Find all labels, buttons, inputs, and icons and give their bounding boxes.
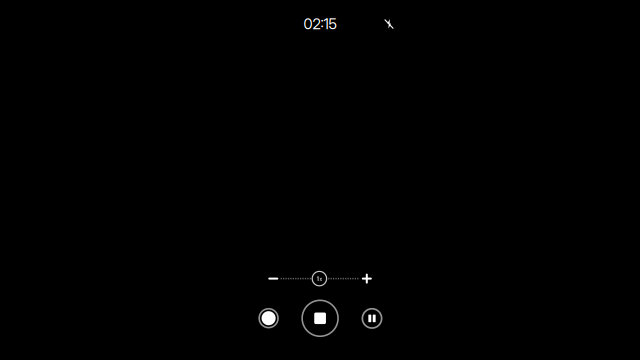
button[interactable]: Zoom In — [356, 268, 378, 290]
button[interactable]: Stop Recording — [298, 296, 342, 340]
button[interactable]: Take Photo — [249, 298, 289, 338]
button[interactable]: Pause Recording — [354, 300, 390, 336]
staticText: 02:15 — [303, 15, 336, 33]
button[interactable]: Zoom Out — [262, 268, 284, 290]
button[interactable]: Zoom 1x — [309, 269, 329, 289]
